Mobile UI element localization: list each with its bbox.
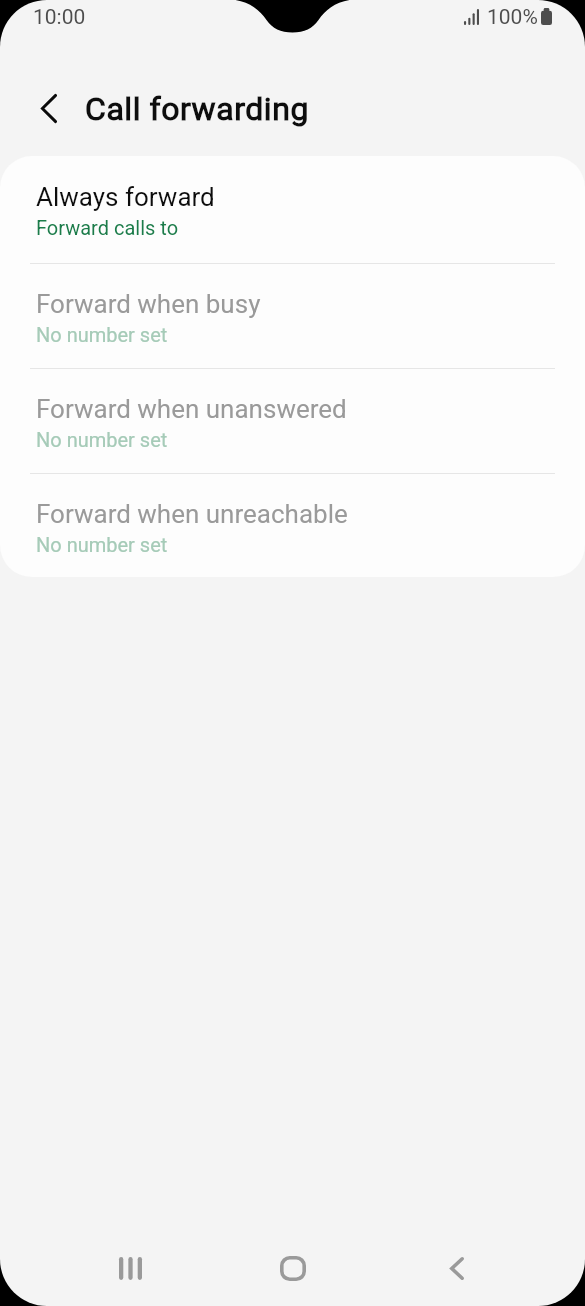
staticText: Call forwarding xyxy=(85,90,309,128)
button[interactable]: Recent apps xyxy=(98,1236,162,1300)
button[interactable]: Always forward xyxy=(0,156,585,263)
button[interactable]: Navigate up xyxy=(24,83,74,133)
staticText: No number set xyxy=(36,323,168,346)
button[interactable]: Forward when busy xyxy=(0,263,585,368)
staticText: 10:00 xyxy=(33,5,86,30)
button[interactable]: Forward when unanswered xyxy=(0,368,585,474)
button[interactable]: Home xyxy=(261,1236,325,1300)
staticText: No number set xyxy=(36,428,168,451)
staticText: Forward when busy xyxy=(36,289,261,319)
staticText: Forward calls to xyxy=(36,216,179,239)
staticText: Forward when unanswered xyxy=(36,394,347,424)
button[interactable]: Back xyxy=(425,1236,489,1300)
staticText: Always forward xyxy=(36,182,215,212)
staticText: Forward when unreachable xyxy=(36,499,348,529)
staticText: No number set xyxy=(36,533,168,556)
button[interactable]: Forward when unreachable xyxy=(0,473,585,577)
staticText: 100% xyxy=(487,5,538,30)
